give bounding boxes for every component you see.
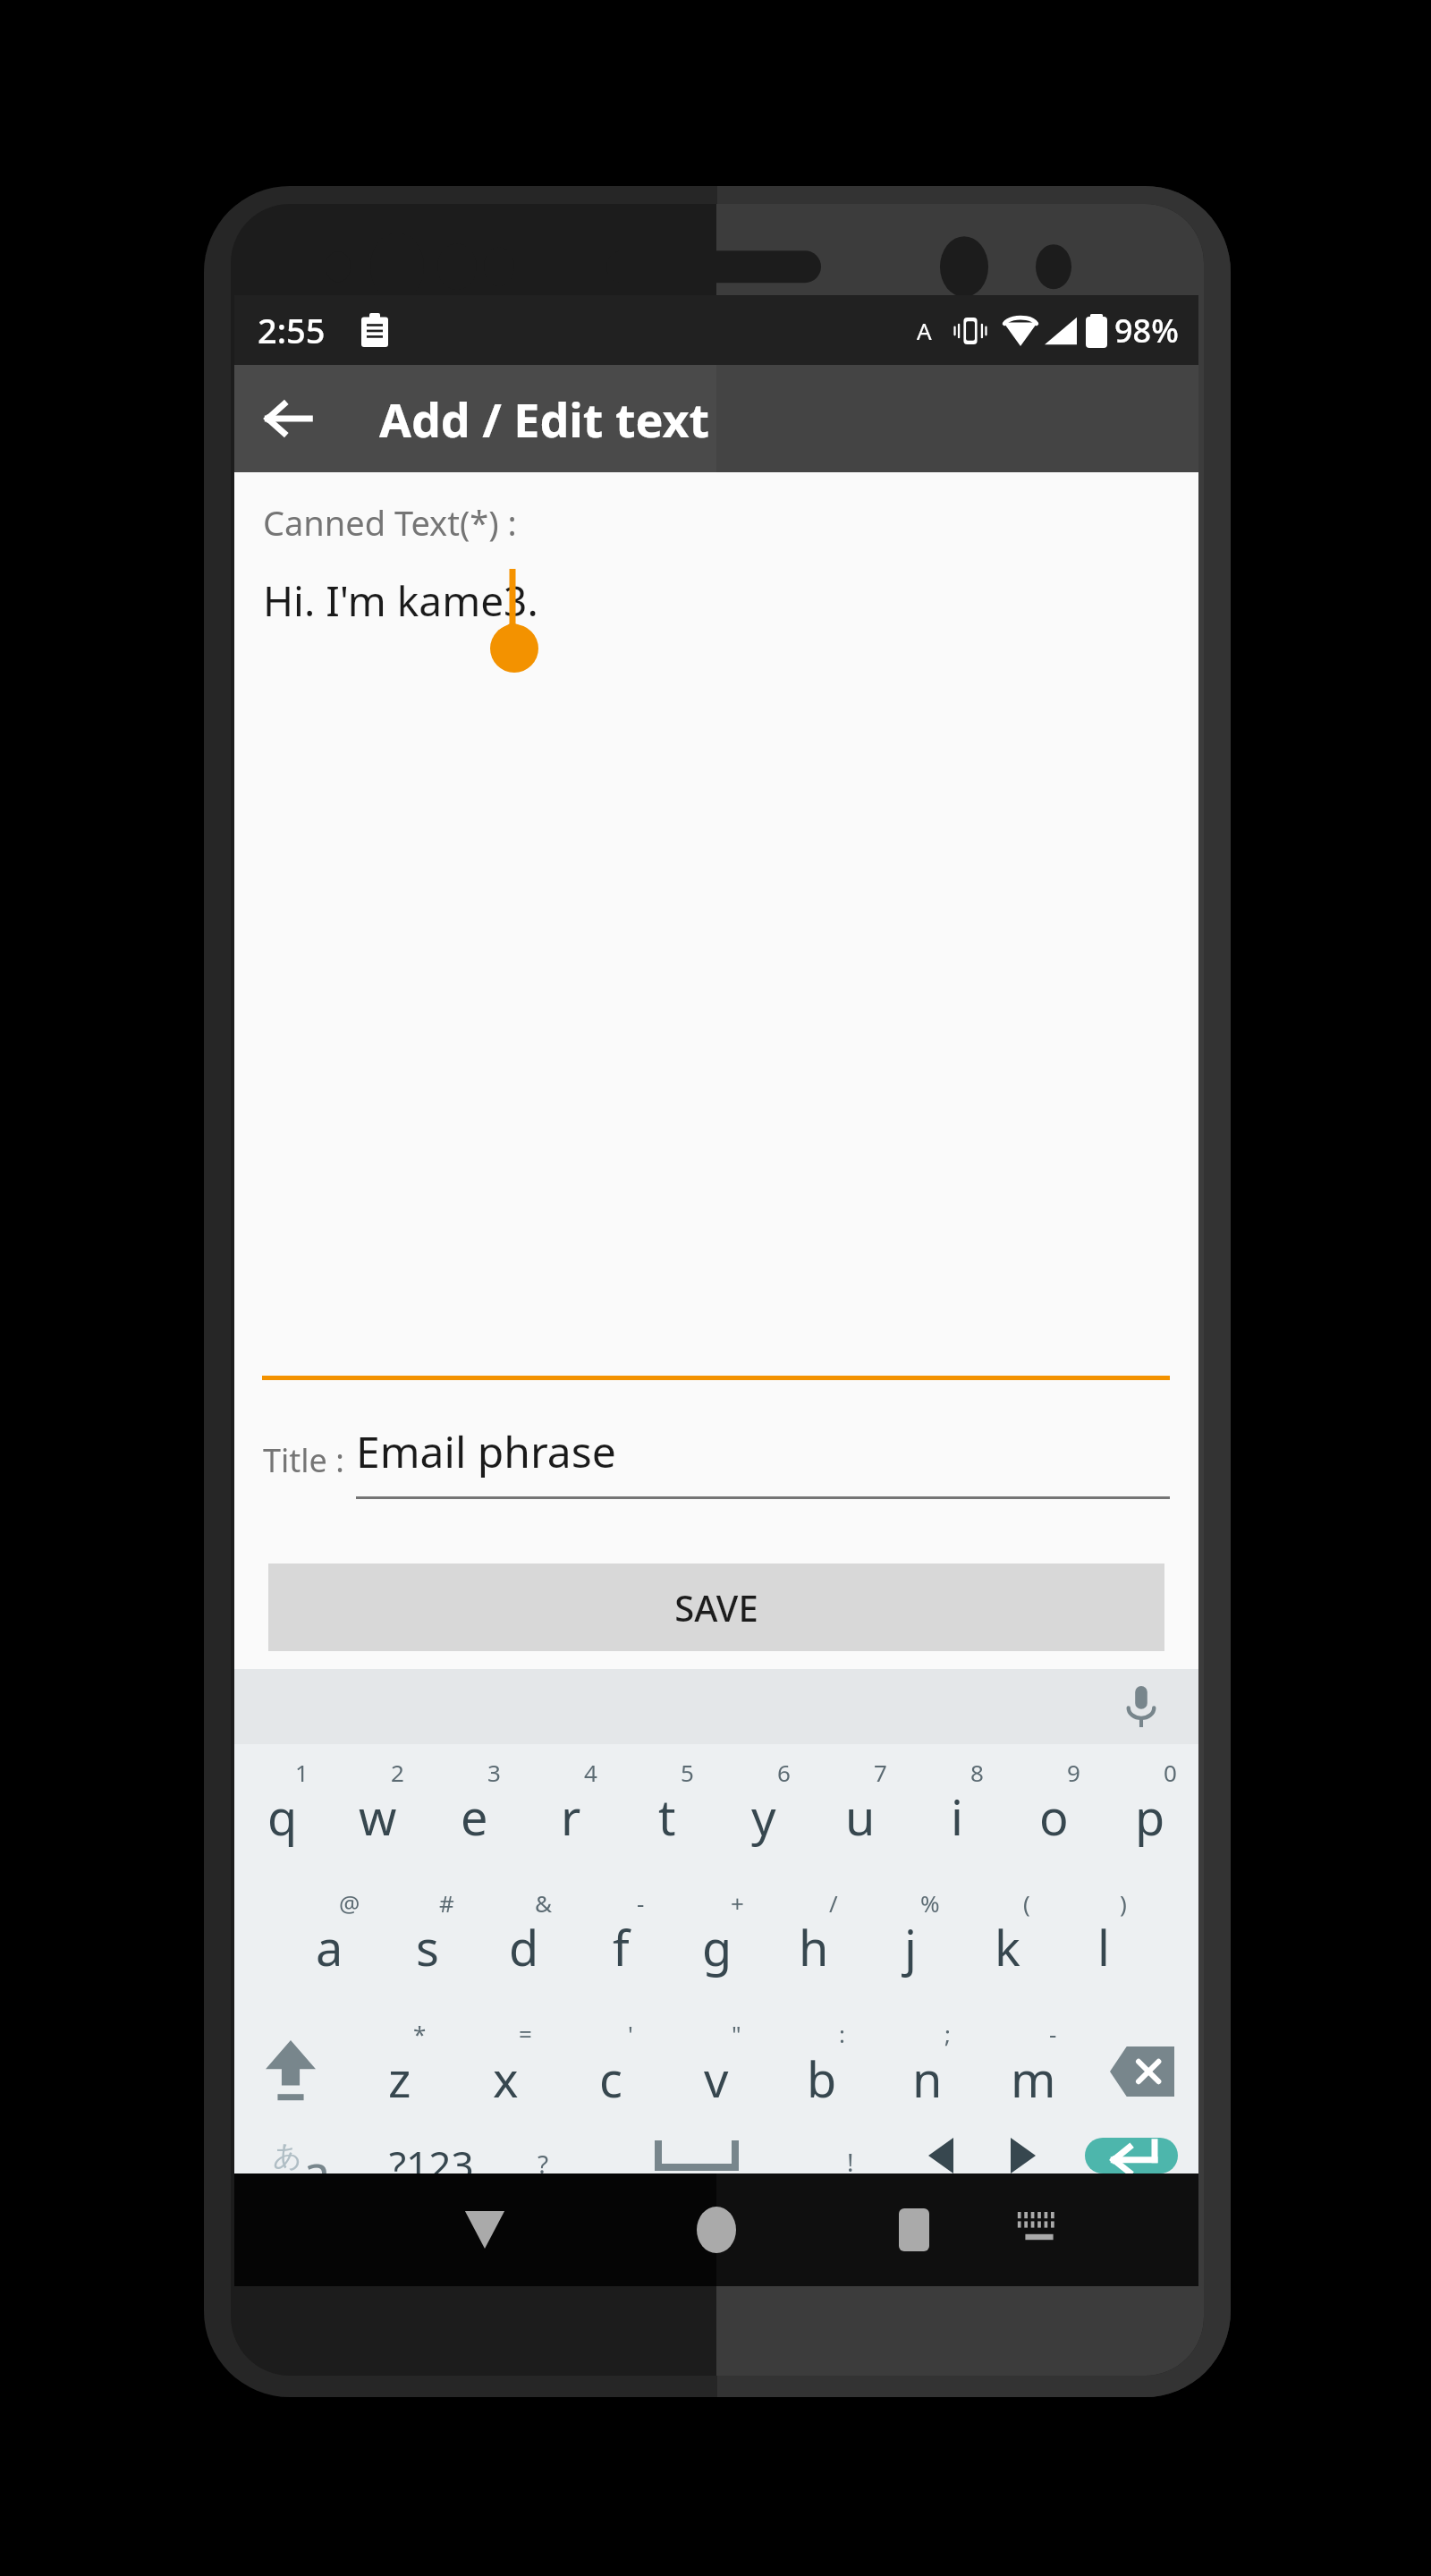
button[interactable]: & (476, 1875, 572, 2005)
staticText: . (845, 2143, 857, 2179)
button[interactable]: Shift (234, 2005, 347, 2138)
staticText: ! (847, 2145, 854, 2179)
staticText: d (509, 1914, 539, 1980)
button[interactable]: Space (592, 2138, 801, 2173)
button[interactable]: - (572, 1875, 669, 2005)
staticText: 0 (1164, 1757, 1177, 1788)
staticText: Add / Edit text (379, 387, 710, 451)
staticText: 9 (1067, 1757, 1080, 1788)
staticText: w (359, 1784, 397, 1850)
staticText: h (799, 1914, 829, 1980)
staticText: SAVE (674, 1583, 758, 1631)
button[interactable]: 1 (234, 1744, 330, 1875)
staticText: f (613, 1914, 630, 1980)
staticText: 2 (391, 1757, 404, 1788)
button[interactable]: " (664, 2005, 769, 2138)
staticText: ; (944, 2018, 951, 2049)
staticText: - (1049, 2018, 1057, 2049)
button[interactable]: Switch keyboard (986, 2173, 1093, 2286)
button[interactable]: ?123 (368, 2138, 494, 2173)
staticText: あ (273, 2138, 302, 2173)
staticText: l (1097, 1914, 1110, 1980)
staticText: s (416, 1914, 439, 1980)
button[interactable]: Cursor right (982, 2138, 1064, 2173)
staticText: 6 (777, 1757, 791, 1788)
staticText: n (912, 2046, 943, 2112)
staticText: 2:55 (258, 307, 326, 353)
staticText: Canned Text(*) : (263, 499, 517, 546)
button[interactable]: # (378, 1875, 476, 2005)
staticText: 7 (874, 1757, 887, 1788)
staticText: y (751, 1784, 776, 1850)
button[interactable]: ( (959, 1875, 1055, 2005)
staticText: - (637, 1887, 645, 1919)
button[interactable]: - (980, 2005, 1086, 2138)
button[interactable]: Recent apps (860, 2173, 968, 2286)
staticText: ? (538, 2147, 549, 2181)
button[interactable]: Enter (1064, 2138, 1198, 2173)
button[interactable]: Home (663, 2173, 770, 2286)
button[interactable]: 2 (330, 1744, 426, 1875)
button[interactable]: 9 (1005, 1744, 1102, 1875)
button[interactable]: : (769, 2005, 875, 2138)
staticText: 8 (970, 1757, 984, 1788)
button[interactable]: = (453, 2005, 558, 2138)
staticText: Hi. I'm kame3. (263, 572, 538, 629)
button[interactable]: ? (494, 2138, 592, 2173)
staticText: z (388, 2046, 411, 2112)
button[interactable]: 3 (426, 1744, 522, 1875)
staticText: 3 (487, 1757, 501, 1788)
staticText: , (538, 2143, 549, 2179)
button[interactable]: SAVE (268, 1563, 1164, 1651)
button[interactable]: 0 (1102, 1744, 1198, 1875)
button[interactable]: ' (558, 2005, 664, 2138)
button[interactable]: Back (245, 376, 331, 462)
button[interactable]: 6 (715, 1744, 812, 1875)
staticText: = (519, 2018, 532, 2049)
staticText: e (461, 1784, 488, 1850)
button[interactable]: 8 (909, 1744, 1005, 1875)
staticText: p (1135, 1784, 1165, 1850)
staticText: u (845, 1784, 876, 1850)
staticText: g (702, 1914, 732, 1980)
button[interactable]: % (862, 1875, 959, 2005)
staticText: 4 (584, 1757, 597, 1788)
staticText: c (599, 2046, 622, 2112)
button[interactable]: 4 (522, 1744, 619, 1875)
staticText: b (807, 2046, 837, 2112)
staticText: 5 (681, 1757, 694, 1788)
button[interactable]: ) (1055, 1875, 1152, 2005)
staticText: 98% (1114, 309, 1179, 352)
staticText: q (267, 1784, 298, 1850)
button[interactable]: @ (281, 1875, 378, 2005)
staticText: & (535, 1887, 553, 1919)
staticText: ( (1023, 1887, 1030, 1919)
button[interactable]: / (766, 1875, 862, 2005)
staticText: o (1039, 1784, 1069, 1850)
staticText: t (658, 1784, 676, 1850)
button[interactable]: 5 (619, 1744, 715, 1875)
button[interactable]: ! (801, 2138, 900, 2173)
staticText: / (829, 1887, 838, 1919)
button[interactable]: * (347, 2005, 453, 2138)
staticText: a (316, 1914, 343, 1980)
button[interactable]: Back (431, 2173, 538, 2286)
staticText: i (951, 1784, 963, 1850)
staticText: ' (628, 2018, 633, 2049)
button[interactable]: Backspace (1086, 2005, 1198, 2138)
staticText: Email phrase (356, 1422, 616, 1480)
staticText: a (302, 2138, 331, 2173)
button[interactable]: + (669, 1875, 766, 2005)
button[interactable]: 7 (812, 1744, 909, 1875)
button[interactable]: Change language (234, 2138, 368, 2173)
staticText: x (493, 2046, 519, 2112)
staticText: @ (339, 1887, 360, 1919)
button[interactable]: ; (875, 2005, 980, 2138)
button[interactable]: Voice input (1109, 1674, 1173, 1739)
button[interactable]: Cursor left (900, 2138, 982, 2173)
staticText: 1 (295, 1757, 309, 1788)
staticText: A (917, 315, 932, 346)
staticText: + (731, 1887, 744, 1919)
staticText: ) (1120, 1887, 1127, 1919)
staticText: ?123 (389, 2138, 474, 2173)
